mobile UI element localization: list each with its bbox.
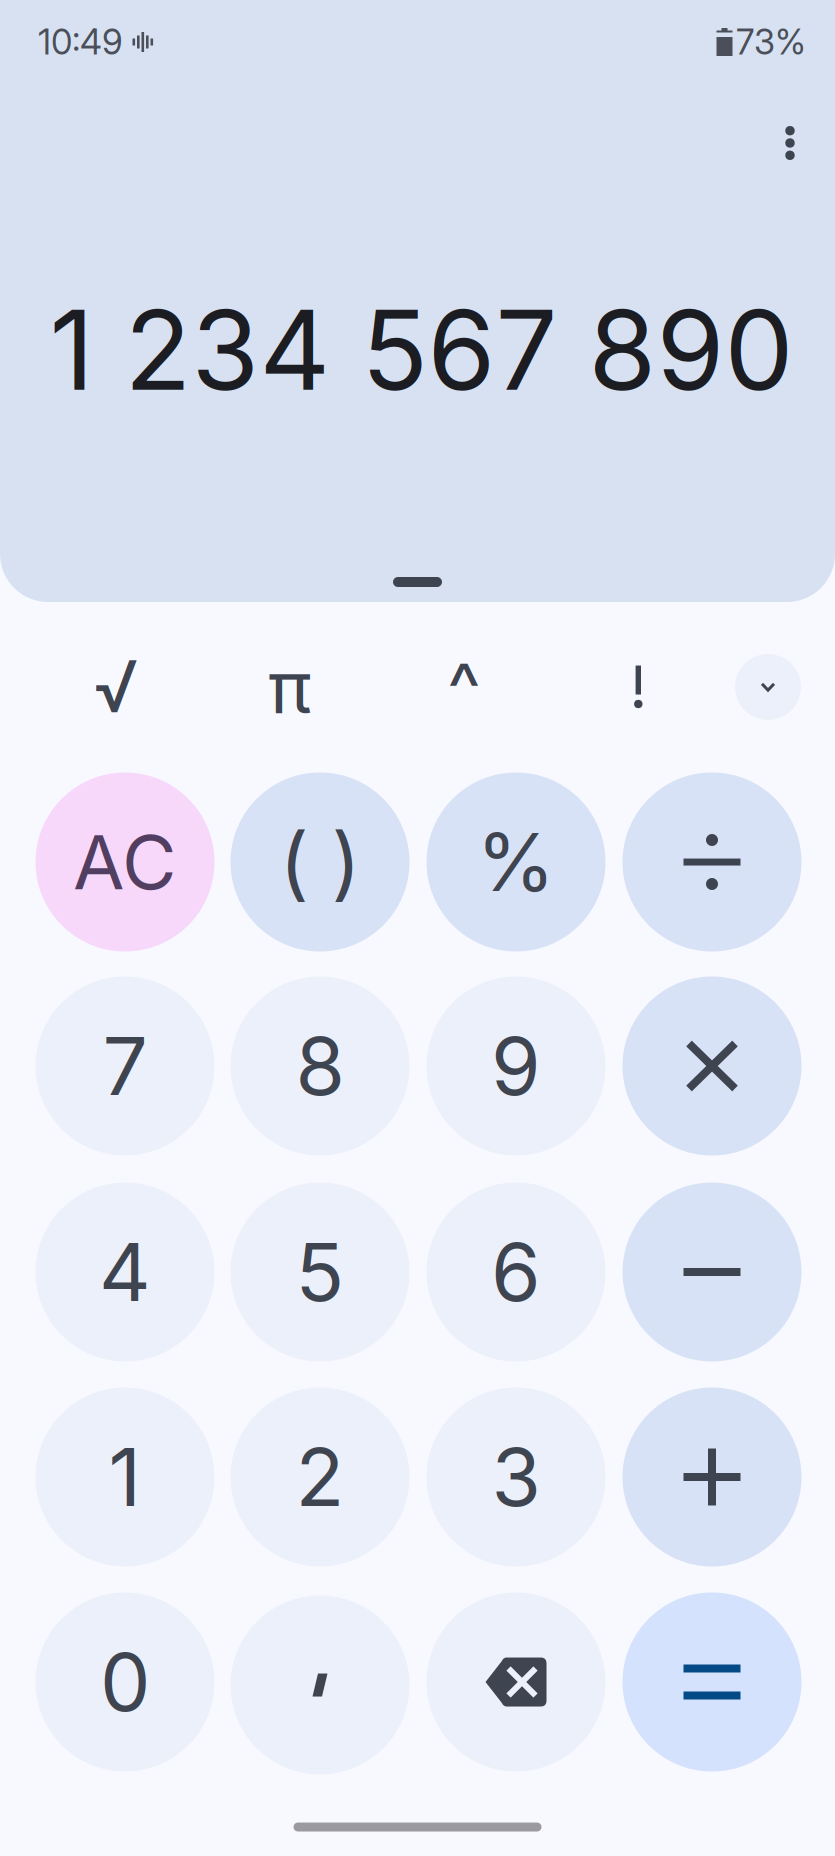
button[interactable]: 7	[35, 976, 214, 1155]
button[interactable]: 3	[426, 1387, 605, 1566]
staticText: 73%	[736, 21, 806, 63]
staticText: 1	[108, 1429, 141, 1525]
button[interactable]: 2	[230, 1387, 409, 1566]
staticText: π	[268, 643, 312, 730]
staticText: ^	[447, 644, 481, 731]
staticText: 0	[100, 1634, 150, 1730]
staticText: 3	[491, 1429, 540, 1525]
button[interactable]: Multiply	[622, 976, 801, 1155]
staticText: √	[93, 642, 138, 729]
button[interactable]: More options	[746, 99, 834, 187]
staticText: 7	[102, 1018, 147, 1114]
button[interactable]: 6	[426, 1182, 605, 1361]
button[interactable]: Factorial	[579, 632, 699, 742]
button[interactable]: %	[426, 772, 605, 951]
button[interactable]: More functions	[735, 654, 801, 720]
button[interactable]: 4	[35, 1182, 214, 1361]
button[interactable]: Minus	[622, 1182, 801, 1361]
button[interactable]: Equals	[622, 1592, 801, 1771]
staticText: 9	[491, 1018, 541, 1114]
button[interactable]: Plus	[622, 1387, 801, 1566]
button[interactable]: ( )	[230, 772, 409, 951]
staticText: AC	[73, 817, 177, 907]
button[interactable]: 0	[35, 1592, 214, 1771]
staticText: ( )	[279, 814, 360, 910]
button[interactable]: Power	[404, 633, 524, 743]
staticText: 6	[491, 1224, 541, 1320]
button[interactable]: Pi	[230, 632, 350, 742]
button[interactable]: 9	[426, 976, 605, 1155]
button[interactable]: 8	[230, 976, 409, 1155]
button[interactable]: Divide	[622, 772, 801, 951]
staticText: 10:49	[38, 21, 123, 63]
button[interactable]: 1	[35, 1387, 214, 1566]
button[interactable]: Backspace	[426, 1592, 605, 1771]
staticText: 1 234 567 890	[49, 284, 793, 416]
staticText: 5	[295, 1224, 344, 1320]
button[interactable]: 5	[230, 1182, 409, 1361]
button[interactable]: AC	[35, 772, 214, 951]
staticText: 4	[99, 1224, 151, 1320]
staticText: 2	[295, 1429, 344, 1525]
staticText: %	[476, 814, 555, 910]
button[interactable]: Decimal comma	[230, 1595, 409, 1774]
staticText: 8	[295, 1018, 344, 1114]
button[interactable]: Square root	[56, 631, 176, 741]
